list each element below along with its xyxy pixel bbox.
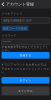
staticText: 下のボタンからログインしてください: [1, 67, 49, 74]
staticText: ログイン: [19, 79, 31, 82]
staticText: パスワード: [1, 34, 16, 37]
staticText: メールアドレス: [1, 12, 22, 15]
button[interactable]: キャンセル: [1, 86, 49, 95]
staticText: すでにアカウントをお持ちの方は: [1, 63, 46, 66]
staticText: ••••••••: [3, 40, 11, 44]
button[interactable]: 戻る: [1, 2, 5, 7]
staticText: キャンセル: [18, 89, 33, 93]
button[interactable]: ログイン: [1, 77, 49, 84]
staticText: アカウント登録: [6, 2, 34, 7]
button[interactable]: 登録する: [1, 52, 49, 59]
staticText: 認証コードを送信: [3, 27, 27, 30]
button[interactable]: 認証コードを送信: [1, 26, 28, 31]
staticText: 登録する: [19, 54, 31, 57]
staticText: example@example.com: [3, 19, 31, 22]
staticText: 半角英数字8文字以上で入力してください: [1, 45, 48, 52]
